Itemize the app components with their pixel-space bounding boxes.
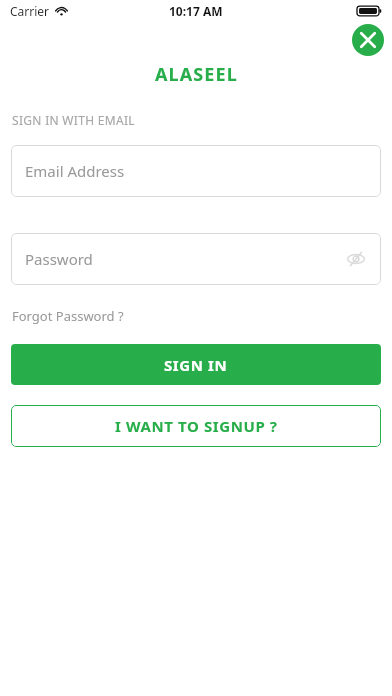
button[interactable]: Email Address [11, 145, 381, 197]
staticText: Carrier [10, 3, 50, 19]
button[interactable]: Forgot Password ? [12, 307, 124, 325]
staticText: I WANT TO SIGNUP ? [115, 416, 278, 436]
staticText: ALASEEL [155, 62, 238, 87]
button[interactable]: SIGN IN [11, 344, 381, 385]
button[interactable]: Password [11, 233, 381, 285]
staticText: SIGN IN WITH EMAIL [12, 112, 135, 128]
staticText: Forgot Password ? [12, 307, 124, 325]
staticText: 10:17 AM [169, 3, 223, 19]
button[interactable]: I WANT TO SIGNUP ? [11, 405, 381, 447]
staticText: SIGN IN [164, 355, 228, 375]
staticText: Password [25, 249, 93, 269]
staticText: Email Address [25, 161, 125, 181]
other: Show password [345, 248, 367, 270]
button[interactable]: Close [352, 24, 384, 56]
